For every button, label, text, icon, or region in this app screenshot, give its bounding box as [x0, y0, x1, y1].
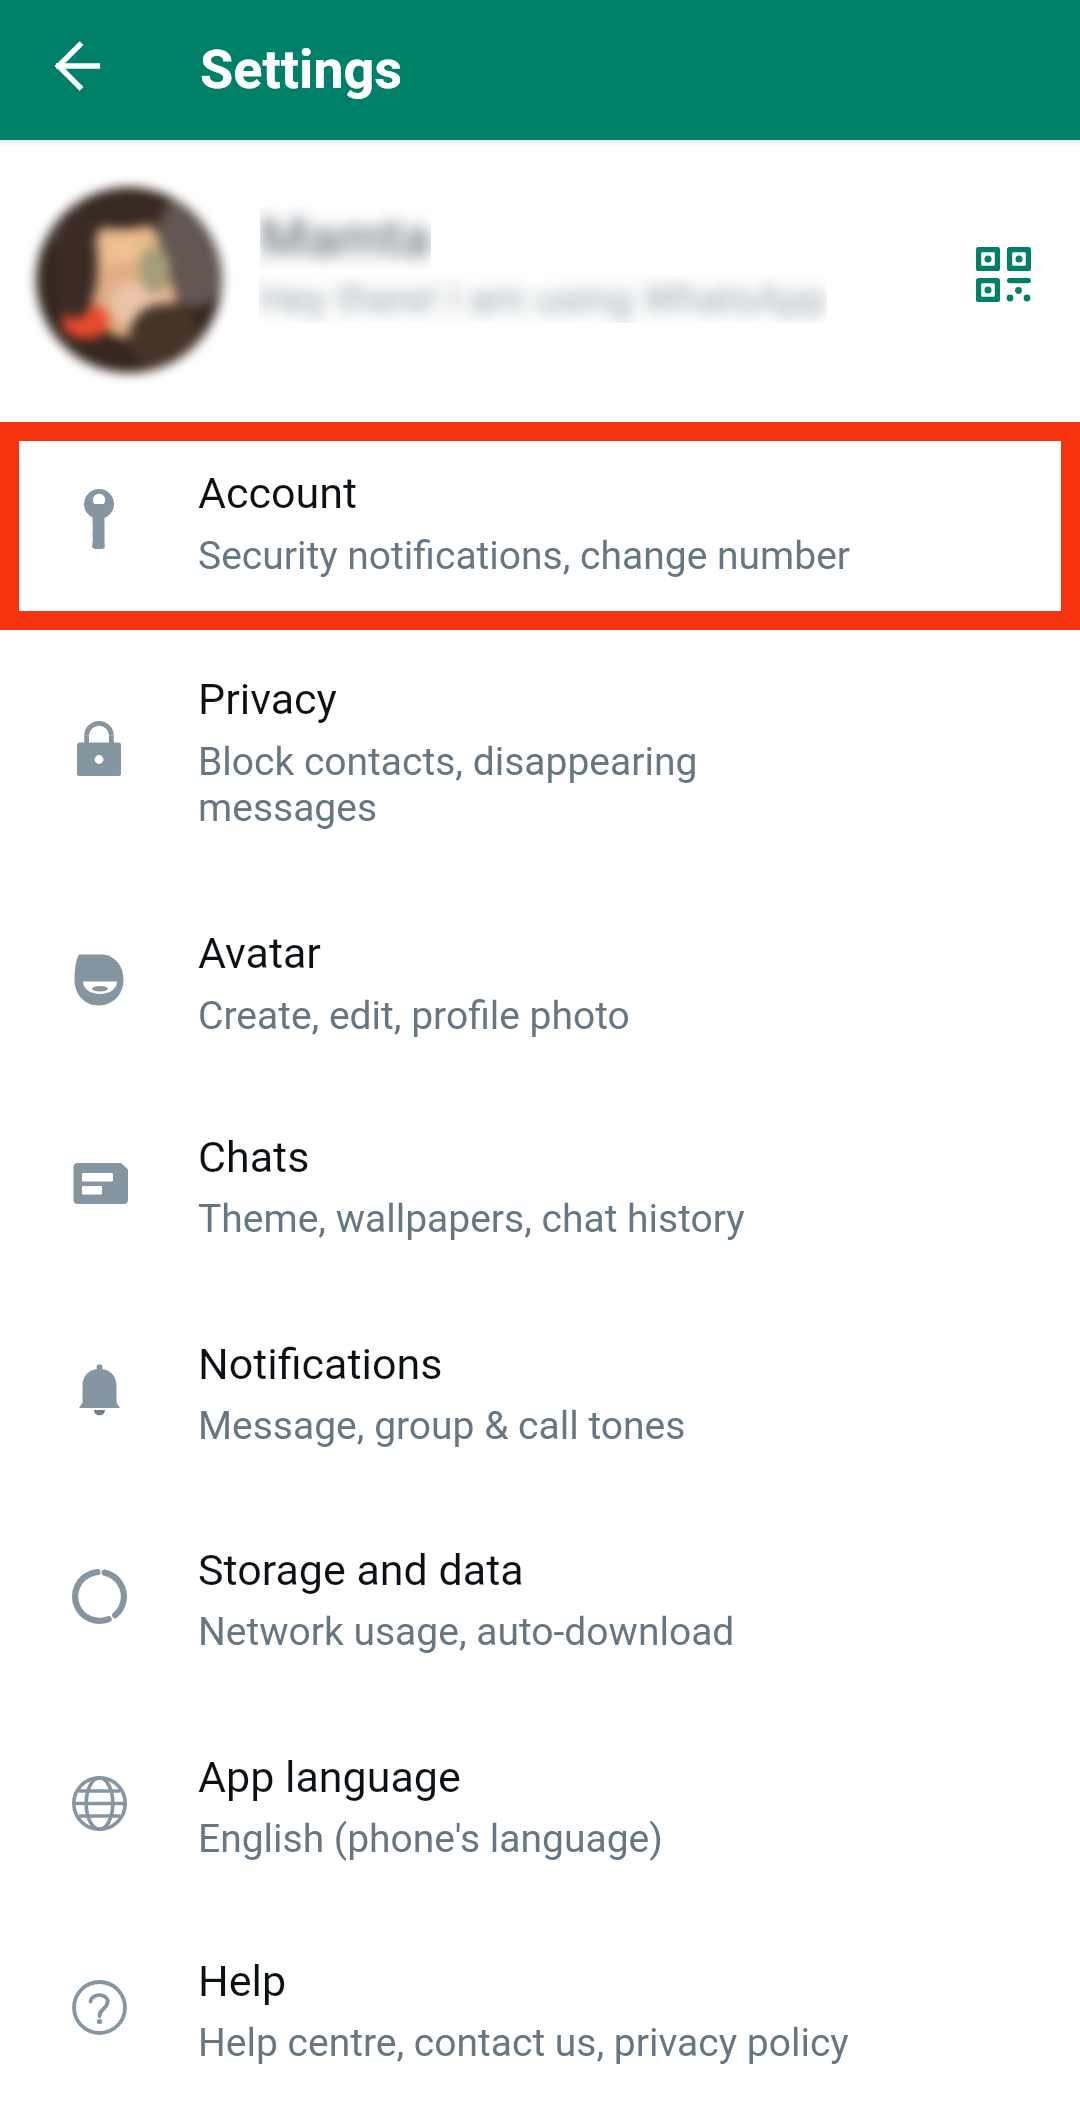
button[interactable]: Chats [0, 1084, 1080, 1290]
staticText: Storage and data [198, 1545, 524, 1595]
staticText: Settings [200, 38, 403, 101]
button[interactable]: Avatar [0, 880, 1080, 1086]
staticText: Privacy [198, 674, 337, 724]
button[interactable]: Account [0, 420, 1080, 626]
button[interactable]: QR code [949, 220, 1057, 328]
staticText: Theme, wallpapers, chat history [198, 1196, 745, 1242]
staticText: Security notifications, change number [198, 533, 851, 579]
button[interactable]: Notifications [0, 1291, 1080, 1497]
button[interactable]: Privacy [0, 649, 1080, 903]
button[interactable]: Mamta [0, 140, 1080, 420]
button[interactable]: App language [0, 1704, 1080, 1910]
button[interactable]: Help [0, 1908, 1080, 2114]
staticText: Notifications [198, 1339, 443, 1389]
staticText: Avatar [198, 928, 321, 978]
staticText: Message, group & call tones [198, 1403, 686, 1449]
button[interactable]: Storage and data [0, 1497, 1080, 1703]
staticText: Block contacts, disappearing messages [198, 739, 698, 830]
staticText: Network usage, auto-download [198, 1609, 735, 1655]
staticText: Hey there! I am using WhatsApp [259, 276, 827, 323]
staticText: Account [198, 468, 358, 518]
staticText: App language [198, 1752, 461, 1802]
button[interactable]: Back [30, 18, 126, 114]
staticText: English (phone's language) [198, 1816, 663, 1862]
staticText: Help [198, 1956, 287, 2006]
staticText: Create, edit, profile photo [198, 993, 630, 1039]
staticText: Mamta [260, 206, 431, 269]
staticText: Help centre, contact us, privacy policy [198, 2020, 849, 2066]
staticText: Chats [198, 1132, 310, 1182]
